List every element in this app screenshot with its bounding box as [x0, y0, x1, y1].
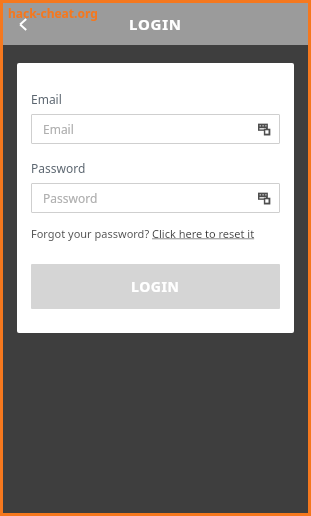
- button[interactable]: Show keyboard: [257, 122, 272, 137]
- button[interactable]: Password: [31, 183, 280, 213]
- button[interactable]: LOGIN: [31, 264, 280, 309]
- button[interactable]: Show keyboard: [257, 191, 272, 206]
- staticText: LOGIN: [131, 277, 180, 296]
- button[interactable]: Email: [31, 114, 280, 144]
- staticText: Forgot your password? Click here to rese…: [31, 226, 255, 241]
- staticText: Password: [31, 160, 86, 176]
- staticText: Email: [31, 91, 62, 107]
- button[interactable]: Forgot your password? Click here to rese…: [31, 226, 280, 241]
- staticText: hack-cheat.org: [8, 5, 98, 21]
- button[interactable]: Back: [3, 4, 43, 44]
- staticText: Email: [43, 121, 74, 137]
- staticText: LOGIN: [129, 14, 182, 34]
- staticText: Password: [43, 190, 98, 206]
